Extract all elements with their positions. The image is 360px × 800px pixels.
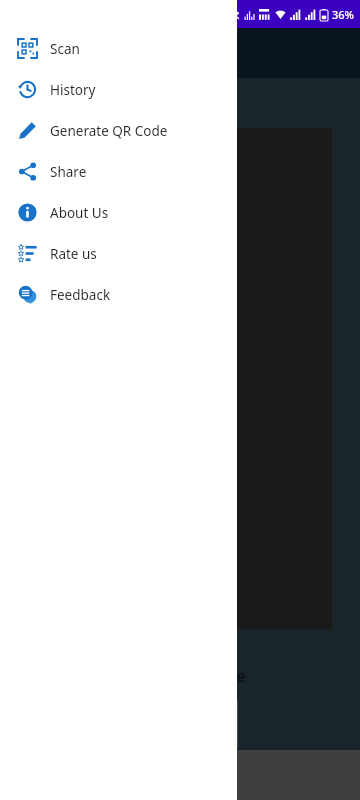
staticText: Rate us: [50, 245, 97, 263]
button[interactable]: Scan: [0, 28, 237, 69]
staticText: 36%: [332, 7, 354, 22]
button[interactable]: History: [0, 69, 237, 110]
staticText: About Us: [50, 204, 109, 222]
staticText: Share: [50, 163, 87, 181]
button[interactable]: Share: [0, 151, 237, 192]
button[interactable]: [237, 0, 360, 800]
staticText: Scan: [50, 40, 80, 58]
button[interactable]: About Us: [0, 192, 237, 233]
staticText: Feedback: [50, 286, 111, 304]
staticText: Scanning is automatically started. Just …: [14, 642, 246, 710]
button[interactable]: Generate QR Code: [0, 110, 237, 151]
button[interactable]: Feedback: [0, 274, 237, 315]
staticText: Scan QR Code: [16, 92, 141, 118]
staticText: History: [50, 81, 96, 99]
button[interactable]: Rate us: [0, 233, 237, 274]
button[interactable]: Test ad.: [14, 700, 238, 748]
staticText: Generate QR Code: [50, 122, 168, 140]
